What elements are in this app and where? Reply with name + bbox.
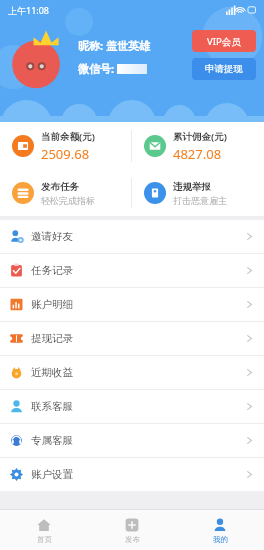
button[interactable]: 任务记录	[0, 254, 264, 287]
staticText: 我的	[213, 535, 228, 544]
staticText: 4827.08	[173, 145, 222, 163]
button[interactable]: 发布	[88, 510, 176, 550]
staticText: 微信号:	[78, 61, 115, 76]
button[interactable]: 账户明细	[0, 288, 264, 321]
staticText: 账户明细	[31, 298, 73, 311]
button[interactable]: 联系客服	[0, 390, 264, 423]
staticText: 轻松完成指标	[41, 195, 95, 206]
staticText: 提现记录	[31, 332, 73, 345]
button[interactable]: 近期收益	[0, 356, 264, 389]
button[interactable]: 首页	[0, 510, 88, 550]
staticText: VIP会员	[207, 35, 241, 48]
staticText: 上午11:08	[8, 4, 50, 16]
staticText: 账户设置	[31, 468, 73, 481]
staticText: 近期收益	[31, 366, 73, 379]
button[interactable]: 违规举报	[132, 170, 264, 216]
staticText: 当前余额(元)	[41, 130, 95, 143]
button[interactable]: 发布任务	[0, 170, 131, 216]
staticText: 发布任务	[41, 181, 79, 193]
button[interactable]: VIP会员	[192, 30, 256, 52]
button[interactable]: 累计佣金(元)	[132, 122, 264, 170]
button[interactable]: 我的	[176, 510, 264, 550]
staticText: 首页	[37, 535, 52, 544]
staticText: 打击恶意雇主	[173, 195, 227, 206]
button[interactable]: 邀请好友	[0, 220, 264, 253]
button[interactable]: 提现记录	[0, 322, 264, 355]
staticText: 违规举报	[173, 181, 211, 193]
staticText: 申请提现	[205, 63, 243, 75]
staticText: 专属客服	[31, 434, 73, 447]
button[interactable]: 账户设置	[0, 458, 264, 491]
staticText: 联系客服	[31, 400, 73, 413]
staticText: 任务记录	[31, 264, 73, 277]
button[interactable]: 申请提现	[192, 58, 256, 80]
staticText: 累计佣金(元)	[173, 130, 227, 143]
staticText: 2509.68	[41, 145, 90, 163]
button[interactable]: 专属客服	[0, 424, 264, 457]
staticText: 邀请好友	[31, 230, 73, 243]
button[interactable]: 当前余额(元)	[0, 122, 131, 170]
staticText: 发布	[125, 535, 140, 544]
staticText: 昵称: 盖世英雄	[78, 38, 150, 53]
